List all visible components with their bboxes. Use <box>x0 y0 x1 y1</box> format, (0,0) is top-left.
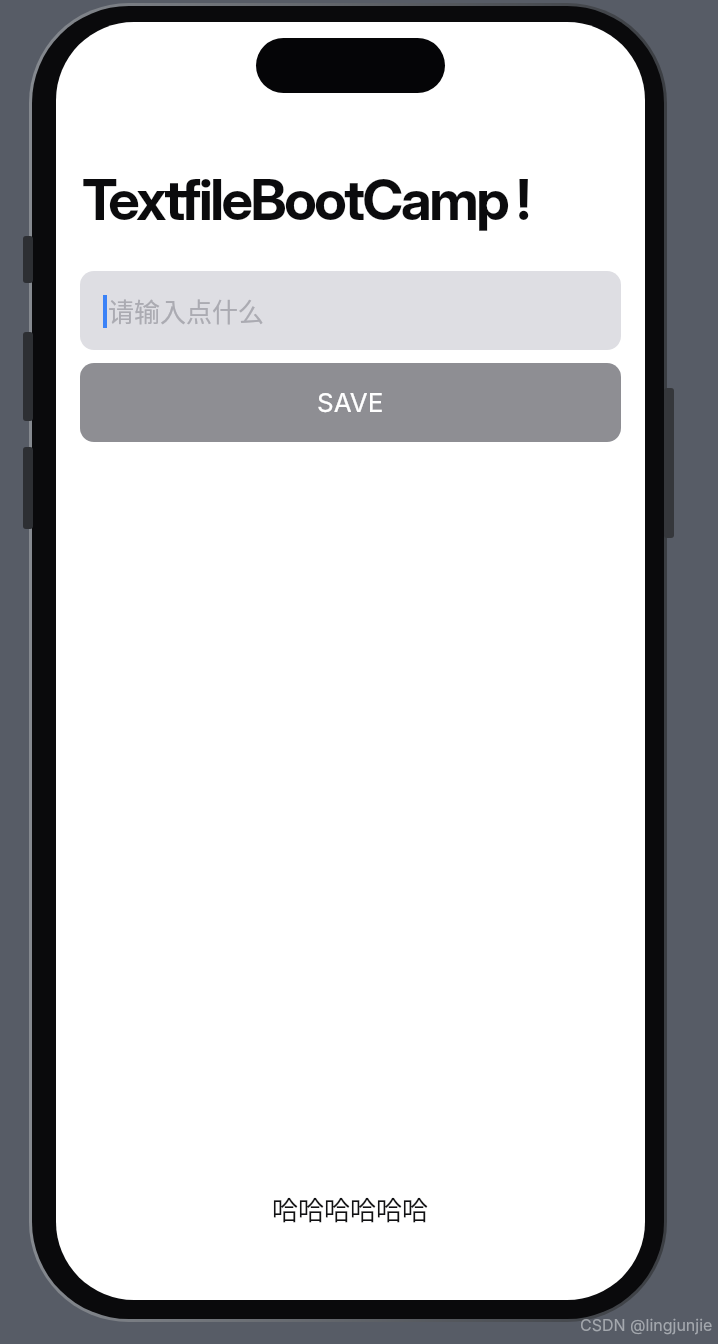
staticText: SAVE <box>317 387 384 418</box>
button[interactable]: SAVE <box>80 363 621 442</box>
staticText: TextfileBootCamp ! <box>82 166 529 234</box>
staticText: 请输入点什么 <box>108 292 265 330</box>
staticText: 哈哈哈哈哈哈 <box>272 1190 429 1228</box>
button[interactable]: 请输入点什么 <box>80 271 621 350</box>
staticText: CSDN @lingjunjie <box>580 1315 713 1334</box>
